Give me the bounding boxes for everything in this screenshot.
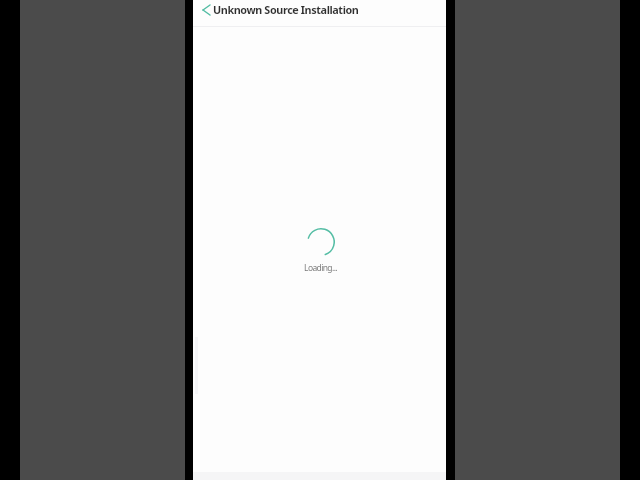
button[interactable]: Back	[193, 0, 213, 26]
staticText: Unknown Source Installation	[213, 2, 359, 17]
staticText: Loading...	[304, 262, 337, 274]
